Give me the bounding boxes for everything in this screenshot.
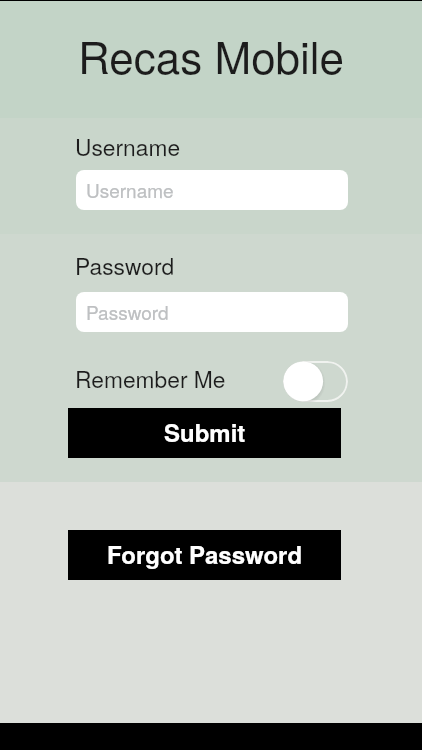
staticText: Forgot Password	[107, 539, 303, 571]
staticText: Password	[86, 299, 169, 325]
staticText: Recas Mobile	[78, 29, 345, 85]
button[interactable]: Forgot Password	[68, 530, 341, 580]
staticText: Password	[75, 251, 175, 281]
staticText: Username	[75, 132, 181, 162]
button[interactable]: Remember Me	[283, 361, 348, 402]
staticText: Submit	[164, 417, 246, 449]
button[interactable]: Password	[76, 292, 348, 332]
button[interactable]: Username	[76, 170, 348, 210]
button[interactable]: Submit	[68, 408, 341, 458]
staticText: Username	[86, 177, 174, 203]
staticText: Remember Me	[75, 364, 226, 394]
